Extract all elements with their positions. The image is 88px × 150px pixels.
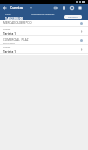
staticText: 03/10/2024: [3, 25, 15, 27]
button[interactable]: Info: [79, 21, 84, 26]
button[interactable]: Cuenta: [0, 27, 88, 36]
staticText: 1.452.986,00: [5, 17, 23, 20]
button[interactable]: Back: [0, 4, 10, 11]
button[interactable]: Offers: [52, 4, 60, 11]
button[interactable]: Open: [79, 47, 84, 52]
button[interactable]: Transferir: [64, 15, 82, 19]
staticText: COMERCIAL PLAZ: [3, 38, 29, 42]
staticText: 02/10/2024: [3, 42, 15, 45]
staticText: Cuenta: [3, 28, 11, 31]
staticText: MERCADOLIBRE*CO: [3, 21, 32, 25]
staticText: Cuenta: [3, 46, 11, 49]
button[interactable]: Cards: [60, 4, 68, 11]
staticText: Transferir: [68, 16, 78, 19]
button[interactable]: Cuenta: [0, 45, 88, 54]
staticText: Movimientos recientes: [31, 13, 55, 16]
button[interactable]: Open: [79, 29, 84, 34]
button[interactable]: Help: [68, 4, 76, 11]
staticText: Tarjeta 1: [3, 32, 16, 36]
staticText: Tarjeta 1: [3, 50, 16, 54]
button[interactable]: Info: [79, 38, 84, 43]
button[interactable]: COMERCIAL PLAZ: [0, 36, 88, 45]
button[interactable]: MERCADOLIBRE*CO: [0, 20, 88, 27]
staticText: Cuentas: [10, 5, 24, 10]
staticText: Saldo: [5, 13, 11, 16]
button[interactable]: More: [76, 4, 84, 11]
